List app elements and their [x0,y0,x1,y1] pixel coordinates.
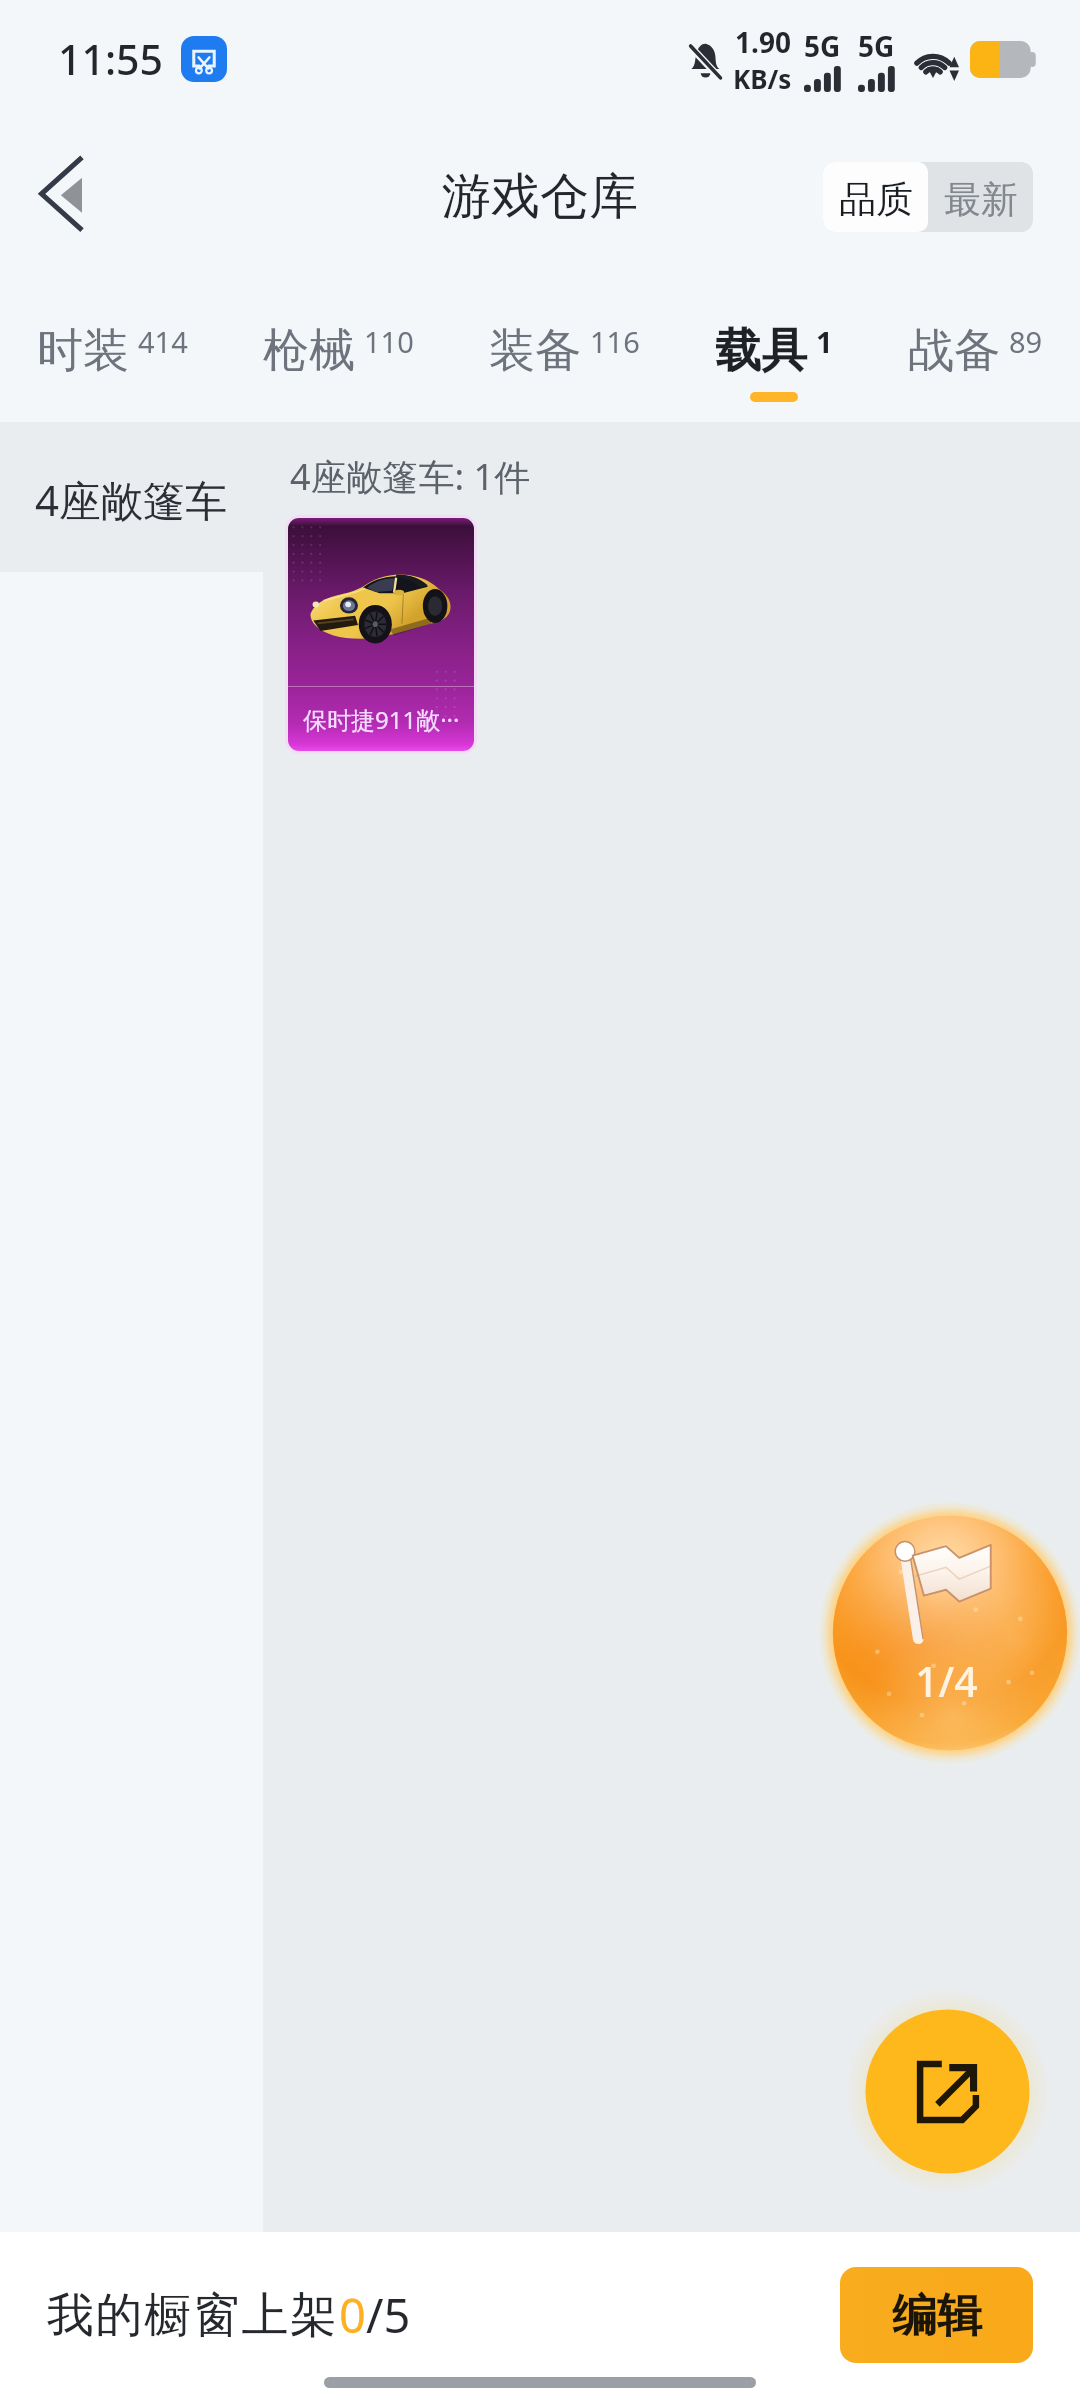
staticText: 414 [138,322,188,361]
staticText: 5G [858,27,895,65]
staticText: 装备 [489,322,581,380]
staticText: 1/4 [915,1653,978,1709]
staticText: 时装 [37,322,129,380]
staticText: 游戏仓库 [442,166,638,228]
staticText: 品质 [839,176,913,223]
staticText: 载具 [715,322,807,380]
staticText: 4座敞篷车 [35,471,228,528]
button[interactable]: Open in new window [866,2010,1030,2174]
button[interactable]: 品质 [823,162,928,232]
button[interactable]: 最新 [928,162,1033,232]
button[interactable]: 保时捷911敞··· [288,518,474,751]
staticText: 编辑 [892,2288,982,2345]
button[interactable]: 时装 [10,274,215,422]
staticText: 我的橱窗上架 [47,2286,339,2345]
staticText: 枪械 [263,322,355,380]
staticText: 11:55 [58,31,163,87]
staticText: 战备 [908,322,1000,380]
staticText: 89 [1009,322,1043,361]
button[interactable]: 战备 [881,274,1070,422]
staticText: 1 [816,322,833,361]
staticText: 116 [590,322,640,361]
button[interactable]: Back [12,145,108,241]
staticText: 最新 [944,176,1018,223]
staticText: 0 [339,2283,366,2347]
button[interactable]: 枪械 [236,274,441,422]
staticText: /5 [366,2283,411,2347]
staticText: 5G [804,27,841,65]
button[interactable]: 编辑 [840,2267,1033,2363]
staticText: 110 [364,322,414,361]
button[interactable]: Missions 1 of 4 [813,1496,1080,1770]
staticText: 保时捷911敞··· [303,703,460,736]
button[interactable]: 装备 [462,274,667,422]
staticText: 1.90 [735,23,791,61]
button[interactable]: 载具 [688,274,860,422]
staticText: 4座敞篷车: 1件 [290,452,531,501]
button[interactable]: 4座敞篷车 [0,422,263,572]
staticText: KB/s [733,61,792,96]
